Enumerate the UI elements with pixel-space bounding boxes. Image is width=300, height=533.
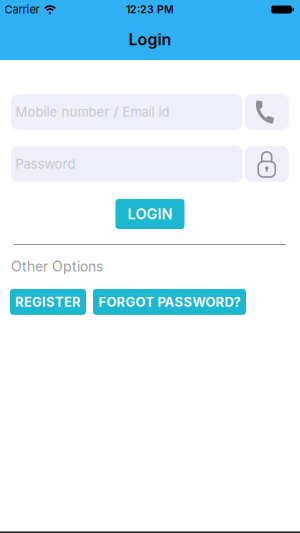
staticText: REGISTER — [15, 294, 81, 310]
staticText: LOGIN — [127, 205, 172, 223]
staticText: Login — [128, 30, 171, 49]
staticText: Mobile number / Email id — [15, 104, 169, 120]
button[interactable]: FORGOT PASSWORD? — [93, 289, 246, 315]
staticText: Carrier — [4, 3, 39, 16]
staticText: 12:23 PM — [126, 3, 174, 16]
staticText: Password — [15, 156, 75, 172]
staticText: Other Options — [11, 258, 103, 275]
button[interactable]: LOGIN — [115, 199, 184, 229]
staticText: FORGOT PASSWORD? — [98, 294, 240, 310]
button[interactable]: REGISTER — [10, 289, 86, 315]
